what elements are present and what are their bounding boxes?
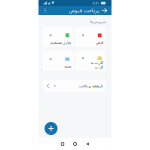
staticText: سرویس‌ها [89, 19, 105, 24]
button[interactable]: More options [41, 6, 49, 15]
staticText: ۹:۴۱ [92, 0, 99, 5]
staticText: پرداخت قبوض [68, 7, 98, 14]
staticText: شارژ مستقیم [50, 40, 71, 45]
button[interactable]: Add payment [44, 122, 57, 135]
button[interactable]: شارژ مستقیم [43, 27, 73, 47]
staticText: تاریخچه پرداخت [78, 84, 102, 88]
button[interactable]: Recent apps [58, 140, 66, 148]
staticText: بسته [64, 64, 71, 68]
button[interactable]: Back [100, 7, 108, 14]
button[interactable]: قبض [75, 27, 105, 47]
staticText: قبض [95, 40, 103, 45]
button[interactable]: Home [71, 140, 79, 148]
button[interactable]: تاریخچه پرداخت [43, 80, 105, 92]
button[interactable]: کارت به کارت [75, 51, 105, 71]
button[interactable]: بسته [43, 51, 73, 71]
staticText: کارت به کارت [90, 60, 103, 69]
button[interactable]: Back [84, 140, 91, 148]
